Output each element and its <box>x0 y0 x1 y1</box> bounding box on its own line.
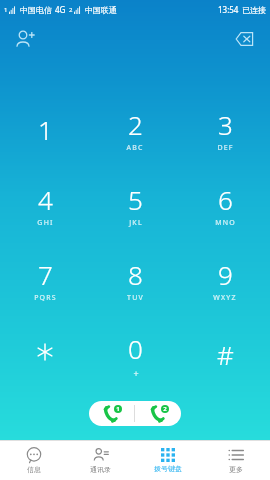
staticText: 4 <box>38 182 53 217</box>
staticText: 3 <box>218 107 233 142</box>
staticText: 通讯录 <box>90 465 111 474</box>
button[interactable]: 6 <box>180 169 270 244</box>
staticText: 6 <box>218 182 233 217</box>
button[interactable]: 9 <box>180 244 270 319</box>
button[interactable]: 信息 <box>0 441 67 480</box>
button[interactable]: 通讯录 <box>67 441 134 480</box>
staticText: WXYZ <box>213 293 237 303</box>
staticText: 1 <box>4 6 8 14</box>
staticText: + <box>133 367 139 379</box>
button[interactable]: 8 <box>90 244 180 319</box>
staticText: 0 <box>128 331 143 366</box>
staticText: PQRS <box>34 293 57 303</box>
staticText: GHI <box>37 218 54 228</box>
button[interactable]: # <box>180 319 270 394</box>
staticText: 2 <box>69 6 73 14</box>
staticText: 拨号键盘 <box>154 464 182 473</box>
staticText: 2 <box>163 405 167 413</box>
button[interactable]: 4 <box>0 169 90 244</box>
staticText: 中国电信 <box>20 5 52 15</box>
button[interactable] <box>0 319 90 394</box>
staticText: 更多 <box>229 465 243 474</box>
staticText: 2 <box>128 107 143 142</box>
staticText: MNO <box>215 218 236 228</box>
staticText: 7 <box>38 257 53 292</box>
staticText: 信息 <box>27 465 41 474</box>
button[interactable]: Call with SIM 2 <box>135 401 181 426</box>
button[interactable]: 拨号键盘 <box>134 441 202 480</box>
staticText: 9 <box>218 257 233 292</box>
staticText: 4G <box>55 4 66 15</box>
button[interactable]: 更多 <box>202 441 270 480</box>
staticText: 1 <box>38 112 53 147</box>
staticText: 1 <box>116 405 120 413</box>
staticText: # <box>217 337 234 372</box>
staticText: ABC <box>126 143 144 153</box>
staticText: TUV <box>127 293 144 303</box>
button[interactable]: Call with SIM 1 <box>89 401 134 426</box>
button[interactable]: Add contact <box>10 24 40 54</box>
button[interactable]: 0 <box>90 319 180 394</box>
staticText: DEF <box>217 143 234 153</box>
button[interactable]: 7 <box>0 244 90 319</box>
staticText: 8 <box>128 257 143 292</box>
staticText: 13:54 <box>218 4 239 15</box>
button[interactable]: 3 <box>180 94 270 169</box>
staticText: JKL <box>129 218 143 228</box>
button[interactable]: 1 <box>0 94 90 169</box>
staticText: 已连接 <box>242 5 266 15</box>
staticText: 中国联通 <box>85 5 117 15</box>
staticText: 5 <box>128 182 143 217</box>
button[interactable]: 5 <box>90 169 180 244</box>
button[interactable]: 2 <box>90 94 180 169</box>
button[interactable]: Clear <box>230 24 260 54</box>
